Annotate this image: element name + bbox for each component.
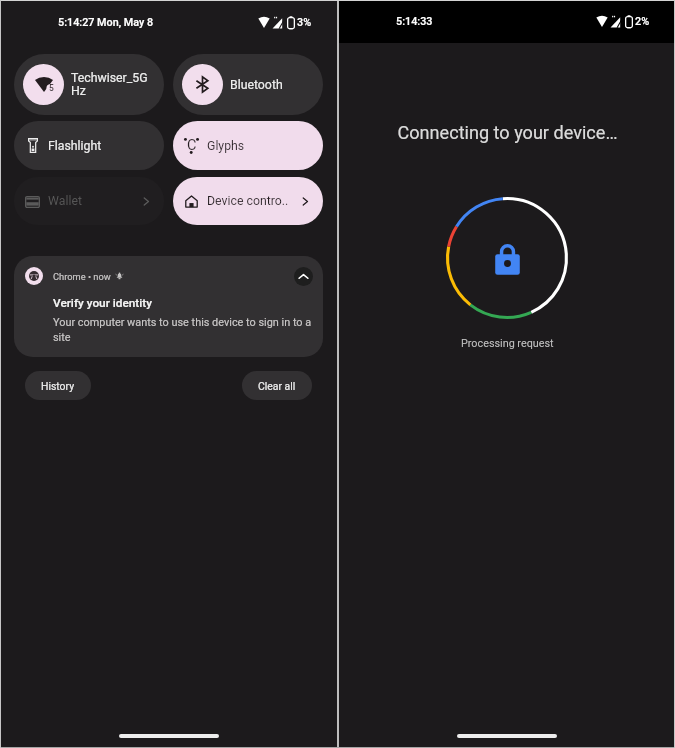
button[interactable]: Wallet [14, 177, 164, 225]
button[interactable]: C [173, 121, 323, 170]
button[interactable]: Collapse notification [294, 267, 313, 286]
staticText: Chrome • now [53, 271, 111, 282]
button[interactable]: Collapse notification [14, 256, 323, 357]
staticText: 5 [49, 83, 54, 93]
staticText: Verify your identity [53, 296, 152, 310]
staticText: Connecting to your device… [397, 122, 618, 143]
staticText: History [41, 380, 75, 392]
button[interactable]: Flashlight [14, 121, 164, 170]
staticText: Processing request [461, 337, 554, 350]
staticText: 2% [635, 15, 650, 28]
staticText: Bluetooth [230, 78, 283, 92]
staticText: Clear all [258, 380, 296, 392]
staticText: 5:14:33 [396, 15, 433, 28]
staticText: Device contro.. [207, 194, 289, 208]
staticText: 3% [297, 16, 312, 29]
button[interactable]: History [25, 371, 91, 400]
staticText: Wallet [48, 194, 82, 208]
staticText: Techwiser_5G Hz [71, 71, 156, 98]
button[interactable]: 5 [14, 54, 164, 115]
staticText: C [187, 137, 197, 154]
button[interactable]: Clear all [242, 371, 312, 400]
button[interactable]: Device contro.. [173, 177, 323, 225]
staticText: 5:14:27 Mon, May 8 [58, 16, 154, 29]
staticText: Flashlight [48, 139, 102, 153]
staticText: Your computer wants to use this device t… [53, 316, 319, 343]
button[interactable]: Bluetooth [173, 54, 323, 115]
staticText: Glyphs [207, 139, 245, 153]
